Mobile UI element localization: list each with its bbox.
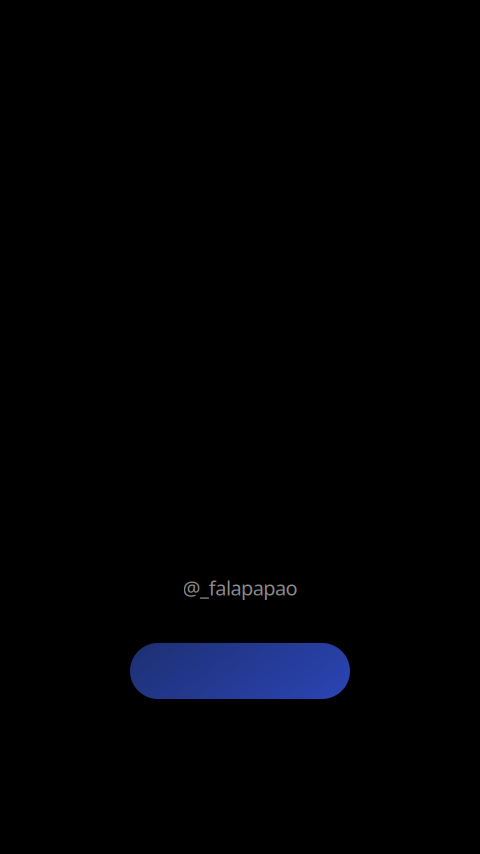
button[interactable]: Open link [130, 643, 350, 699]
staticText: @_falapapao [182, 574, 297, 601]
